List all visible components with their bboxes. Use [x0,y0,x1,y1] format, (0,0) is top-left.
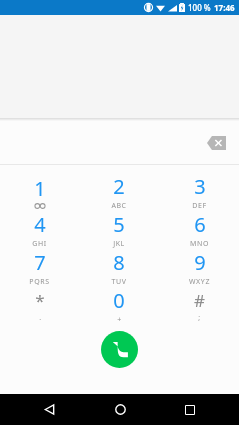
button[interactable]: 2 [79,173,159,211]
button[interactable]: Call [101,331,138,368]
button[interactable]: 0 [79,287,159,325]
staticText: 5 [113,211,125,238]
button[interactable]: Home [98,394,142,425]
staticText: 1 [34,175,46,202]
staticText: WXYZ [189,277,210,287]
staticText: 3 [194,173,206,200]
staticText: GHI [32,239,47,249]
staticText: 9 [194,249,206,276]
button[interactable]: Back [27,394,71,425]
staticText: # [194,289,205,312]
button[interactable]: Recent apps [168,394,212,425]
button[interactable]: * [0,287,79,325]
staticText: 6 [194,211,206,238]
button[interactable]: 3 [159,173,239,211]
staticText: 2 [113,173,125,200]
staticText: . [39,313,42,323]
staticText: ; [198,313,201,323]
staticText: 100 % [188,2,211,13]
button[interactable]: 9 [159,249,239,287]
staticText: 0 [113,287,125,314]
staticText: 17:46 [214,2,235,13]
staticText: 7 [34,249,46,276]
button[interactable]: 6 [159,211,239,249]
staticText: TUV [111,277,127,287]
staticText: + [117,315,122,325]
staticText: 4 [34,211,46,238]
staticText: DEF [192,201,207,211]
button[interactable]: 1 [0,173,79,211]
button[interactable]: # [159,287,239,325]
staticText: MNO [190,239,209,249]
staticText: PQRS [29,277,50,287]
button[interactable]: 4 [0,211,79,249]
staticText: JKL [113,239,125,249]
staticText: ABC [111,201,127,211]
staticText: 8 [113,249,125,276]
staticText: * [35,289,45,312]
button[interactable]: 7 [0,249,79,287]
button[interactable]: 5 [79,211,159,249]
button[interactable]: Backspace [199,126,233,160]
button[interactable]: 8 [79,249,159,287]
